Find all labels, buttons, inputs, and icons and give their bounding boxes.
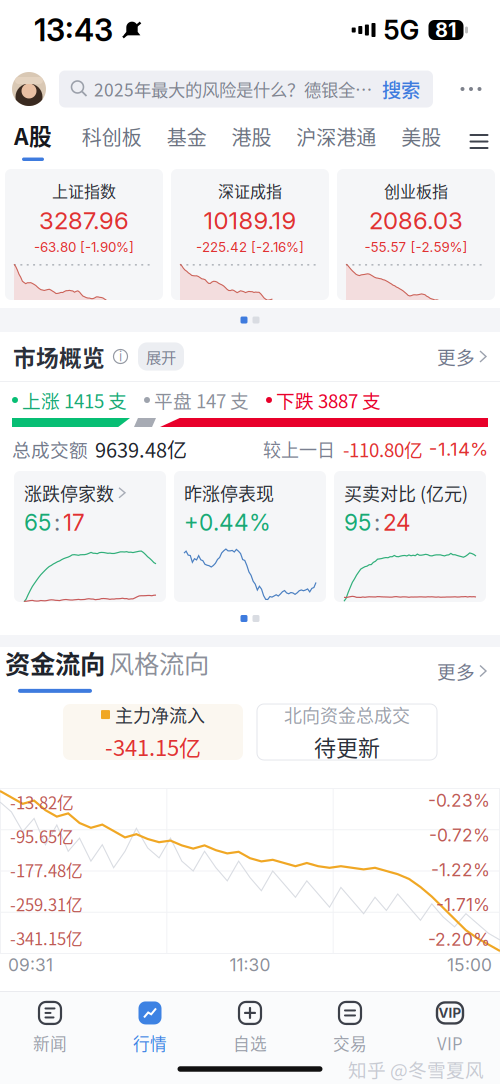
staticText: 深证成指 <box>218 179 282 202</box>
button[interactable]: 新闻 <box>0 992 100 1054</box>
button[interactable]: 沪深港通 <box>296 118 376 166</box>
staticText: 搜索 <box>382 75 420 103</box>
staticText: 81 <box>435 18 457 42</box>
staticText: 3287.96 <box>39 206 129 235</box>
staticText: 行情 <box>133 1031 167 1055</box>
staticText: -1.22% <box>431 859 490 880</box>
staticText: 2086.03 <box>369 206 463 235</box>
staticText: 2025年最大的风险是什么？德银全球… <box>94 76 382 102</box>
staticText: -55.57 [-2.59%] <box>364 239 467 255</box>
staticText: 09:31 <box>8 954 53 975</box>
button[interactable]: 买卖对比 (亿元) <box>334 471 486 602</box>
staticText: 上涨 1415 支 <box>22 386 127 413</box>
button[interactable]: 深证成指 <box>171 169 329 300</box>
staticText: 总成交额 <box>12 435 88 462</box>
staticText: 65 <box>24 509 51 536</box>
staticText: 更多 <box>437 343 475 370</box>
button[interactable]: 交易 <box>300 992 400 1054</box>
staticText: 昨涨停表现 <box>184 480 274 506</box>
staticText: 11:30 <box>229 954 270 975</box>
button[interactable]: 基金 <box>167 118 207 166</box>
staticText: 知乎 @冬雪夏风 <box>348 1055 484 1082</box>
staticText: -110.80亿 <box>343 435 423 462</box>
staticText: -259.31亿 <box>10 892 83 916</box>
button[interactable]: 更多 <box>437 343 487 370</box>
button[interactable]: 科创板 <box>82 118 142 166</box>
staticText: 更多 <box>437 657 475 684</box>
staticText: VIP <box>437 1031 463 1055</box>
staticText: -63.80 [-1.90%] <box>34 239 134 255</box>
staticText: 5G <box>383 14 419 46</box>
staticText: 北向资金总成交 <box>284 701 410 728</box>
staticText: -341.15亿 <box>105 731 201 762</box>
button[interactable]: More <box>442 69 500 109</box>
staticText: 15:00 <box>447 954 492 975</box>
button[interactable]: 港股 <box>231 118 271 166</box>
staticText: 平盘 147 支 <box>154 386 249 413</box>
staticText: A股 <box>14 119 52 151</box>
staticText: -1.71% <box>436 894 490 915</box>
staticText: -95.65亿 <box>10 824 74 848</box>
staticText: 基金 <box>167 122 207 151</box>
button[interactable]: 展开 <box>138 342 184 371</box>
staticText: 9639.48亿 <box>95 434 187 463</box>
staticText: -177.48亿 <box>10 858 83 882</box>
staticText: -1.14% <box>429 438 488 460</box>
button[interactable]: A股 <box>9 118 57 166</box>
staticText: : <box>374 509 380 536</box>
staticText: VIP <box>438 1005 461 1021</box>
staticText: 95 <box>344 509 371 536</box>
staticText: 24 <box>383 509 411 536</box>
staticText: 美股 <box>401 122 441 151</box>
staticText: 市场概览 <box>13 340 105 373</box>
staticText: 买卖对比 (亿元) <box>344 480 468 506</box>
button[interactable]: 上证指数 <box>5 169 163 300</box>
staticText: -341.15亿 <box>10 926 83 950</box>
staticText: 13:43 <box>34 11 113 48</box>
staticText: 下跌 3887 支 <box>276 386 381 413</box>
staticText: 自选 <box>233 1031 267 1055</box>
staticText: 风格流向 <box>109 644 209 681</box>
staticText: 待更新 <box>314 731 380 762</box>
staticText: -13.82亿 <box>10 790 74 814</box>
button[interactable]: Menu <box>466 118 492 166</box>
staticText: 10189.19 <box>203 206 296 235</box>
staticText: 资金流向 <box>5 644 105 681</box>
staticText: 交易 <box>333 1031 367 1055</box>
button[interactable]: 资金流向 <box>13 647 97 695</box>
staticText: 上证指数 <box>52 179 116 202</box>
button[interactable]: VIP <box>400 992 500 1054</box>
button[interactable]: 昨涨停表现 <box>174 471 326 602</box>
staticText: -0.23% <box>428 790 490 811</box>
staticText: 较上一日 <box>263 436 335 462</box>
staticText: i <box>119 348 122 364</box>
staticText: : <box>54 509 60 536</box>
button[interactable]: 自选 <box>200 992 300 1054</box>
button[interactable]: 北向资金总成交 <box>257 704 437 760</box>
staticText: 创业板指 <box>384 179 448 202</box>
button[interactable]: 创业板指 <box>337 169 495 300</box>
button[interactable]: 主力净流入 <box>63 704 243 760</box>
button[interactable]: 更多 <box>437 657 487 684</box>
button[interactable]: 风格流向 <box>117 647 201 695</box>
staticText: 科创板 <box>82 122 142 151</box>
staticText: 沪深港通 <box>296 122 376 151</box>
staticText: -225.42 [-2.16%] <box>196 239 304 255</box>
staticText: 主力净流入 <box>115 701 205 728</box>
button[interactable]: 涨跌停家数 <box>14 471 166 602</box>
staticText: 新闻 <box>33 1031 67 1055</box>
button[interactable]: 2025年最大的风险是什么？德银全球… <box>59 70 433 107</box>
button[interactable]: Profile <box>12 72 46 106</box>
staticText: +0.44% <box>184 509 271 536</box>
button[interactable]: 美股 <box>401 118 441 166</box>
staticText: 港股 <box>231 122 271 151</box>
staticText: 涨跌停家数 <box>24 480 114 506</box>
staticText: -0.72% <box>429 825 490 846</box>
staticText: 17 <box>63 509 85 536</box>
button[interactable]: 行情 <box>100 992 200 1054</box>
staticText: -2.20% <box>428 929 490 950</box>
staticText: 展开 <box>146 345 176 368</box>
